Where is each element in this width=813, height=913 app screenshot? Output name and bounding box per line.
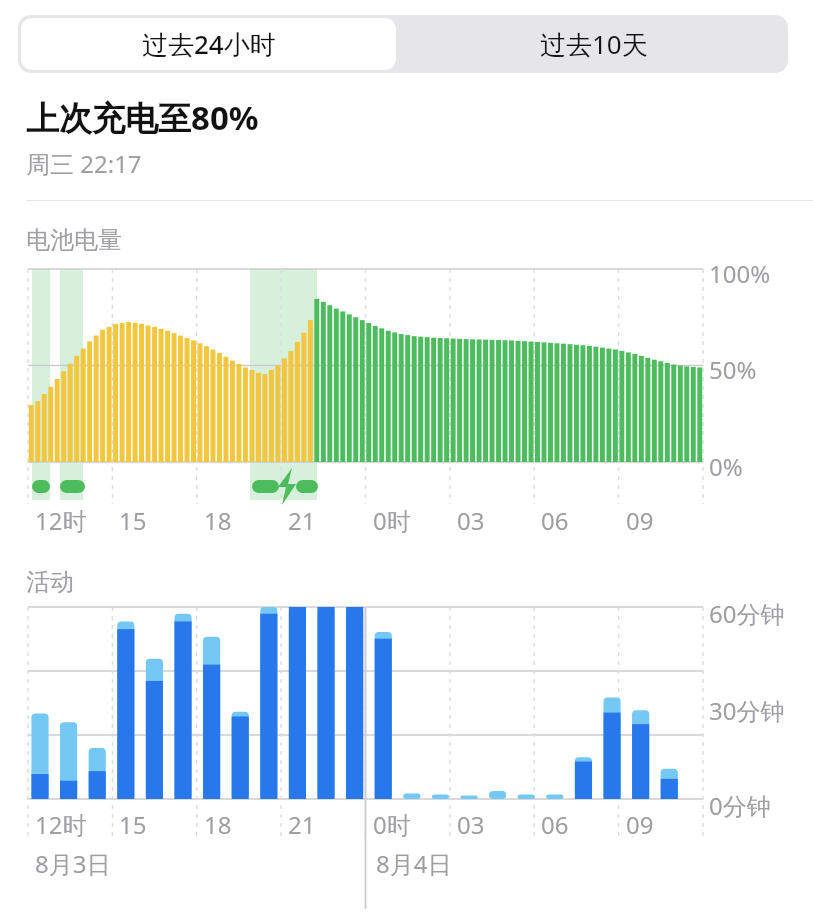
staticText: 周三 22:17 — [26, 147, 142, 180]
staticText: 12时 — [35, 808, 87, 841]
staticText: 过去24小时 — [142, 26, 276, 62]
staticText: 0时 — [373, 504, 411, 537]
staticText: 0时 — [373, 808, 411, 841]
staticText: 06 — [541, 808, 569, 841]
staticText: 03 — [457, 504, 485, 537]
staticText: 15 — [119, 808, 147, 841]
staticText: 18 — [204, 808, 232, 841]
staticText: 0% — [709, 450, 743, 483]
button[interactable]: 过去10天 — [399, 15, 788, 73]
staticText: 09 — [626, 808, 654, 841]
staticText: 21 — [288, 504, 316, 537]
staticText: 8月4日 — [376, 847, 452, 880]
staticText: 8月3日 — [35, 847, 111, 880]
staticText: 18 — [204, 504, 232, 537]
staticText: 0分钟 — [709, 789, 771, 822]
staticText: 06 — [541, 504, 569, 537]
staticText: 过去10天 — [540, 26, 648, 62]
staticText: 15 — [119, 504, 147, 537]
staticText: 30分钟 — [709, 694, 785, 727]
staticText: 电池电量 — [26, 225, 122, 255]
staticText: 12时 — [35, 504, 87, 537]
staticText: 上次充电至80% — [26, 95, 259, 140]
staticText: 50% — [709, 353, 757, 386]
staticText: 21 — [288, 808, 316, 841]
staticText: 03 — [457, 808, 485, 841]
staticText: 09 — [626, 504, 654, 537]
staticText: 60分钟 — [709, 597, 785, 630]
button[interactable]: 过去24小时 — [21, 18, 396, 70]
staticText: 100% — [709, 257, 771, 290]
staticText: 活动 — [26, 567, 74, 597]
